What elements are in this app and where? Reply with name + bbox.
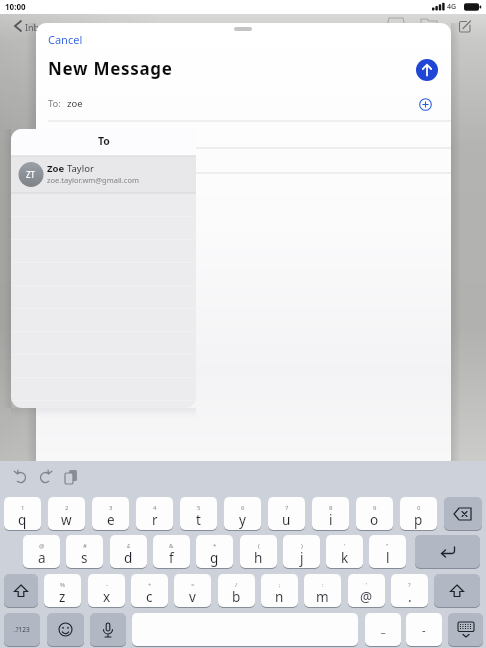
staticText: 2 <box>65 504 69 512</box>
staticText: - <box>422 622 426 637</box>
staticText: @ <box>360 588 373 606</box>
staticText: k <box>341 549 349 567</box>
staticText: 4 <box>153 504 157 512</box>
staticText: ' <box>344 542 346 550</box>
staticText: + <box>148 581 152 589</box>
staticText: i <box>329 511 333 529</box>
staticText: Inbox <box>25 21 50 33</box>
staticText: ZT <box>26 169 36 180</box>
staticText: 5 <box>197 504 201 512</box>
staticText: Cancel <box>48 32 83 47</box>
staticText: zoe.taylor.wm@gmail.com <box>47 175 139 185</box>
staticText: % <box>60 581 65 589</box>
staticText: u <box>282 511 291 529</box>
staticText: f <box>169 549 174 567</box>
staticText: 10:00 <box>5 1 26 12</box>
staticText: = <box>191 581 195 589</box>
staticText: 4G <box>447 2 457 12</box>
staticText: 1 <box>21 504 25 512</box>
staticText: s <box>81 549 88 567</box>
staticText: t <box>196 511 201 529</box>
staticText: y <box>239 511 246 529</box>
staticText: p <box>414 511 423 529</box>
staticText: £ <box>127 542 131 550</box>
staticText: a <box>38 549 46 567</box>
staticText: v <box>189 588 196 606</box>
staticText: Zoe <box>47 162 67 175</box>
staticText: x <box>103 588 111 606</box>
staticText: o <box>370 511 379 529</box>
staticText: 7 <box>285 504 289 512</box>
staticText: # <box>83 542 87 550</box>
staticText: 3 <box>109 504 113 512</box>
staticText: New Message <box>48 57 173 80</box>
staticText: n <box>275 588 284 606</box>
staticText: e <box>107 511 115 529</box>
staticText: : <box>322 581 324 589</box>
staticText: " <box>386 542 389 550</box>
staticText: h <box>254 549 263 567</box>
staticText: c <box>146 588 153 606</box>
staticText: 9 <box>373 504 377 512</box>
staticText: To <box>98 134 110 148</box>
staticText: l <box>386 549 390 567</box>
staticText: ; <box>279 581 281 589</box>
staticText: ' <box>366 581 368 589</box>
staticText: & <box>169 542 174 550</box>
staticText: _ <box>381 621 386 635</box>
staticText: g <box>210 549 219 567</box>
staticText: - <box>106 581 108 589</box>
staticText: ) <box>301 542 303 550</box>
staticText: .?123 <box>14 625 30 634</box>
staticText: j <box>300 549 304 567</box>
staticText: d <box>124 549 133 567</box>
staticText: Cc/Bcc, From: <box>48 127 102 139</box>
staticText: r <box>152 511 158 529</box>
staticText: . <box>408 588 412 606</box>
staticText: / <box>235 581 238 589</box>
staticText: Taylor <box>67 162 94 175</box>
staticText: zoe <box>67 97 83 110</box>
staticText: q <box>18 511 27 529</box>
staticText: m <box>316 588 329 606</box>
staticText: ? <box>408 581 411 589</box>
staticText: w <box>61 511 72 529</box>
staticText: b <box>232 588 241 606</box>
staticText: @ <box>39 542 45 550</box>
staticText: 8 <box>329 504 333 512</box>
staticText: 0 <box>417 504 421 512</box>
staticText: 6 <box>241 504 245 512</box>
staticText: * <box>213 542 217 550</box>
staticText: To: <box>48 97 61 110</box>
staticText: z <box>59 588 66 606</box>
staticText: ( <box>258 542 260 550</box>
